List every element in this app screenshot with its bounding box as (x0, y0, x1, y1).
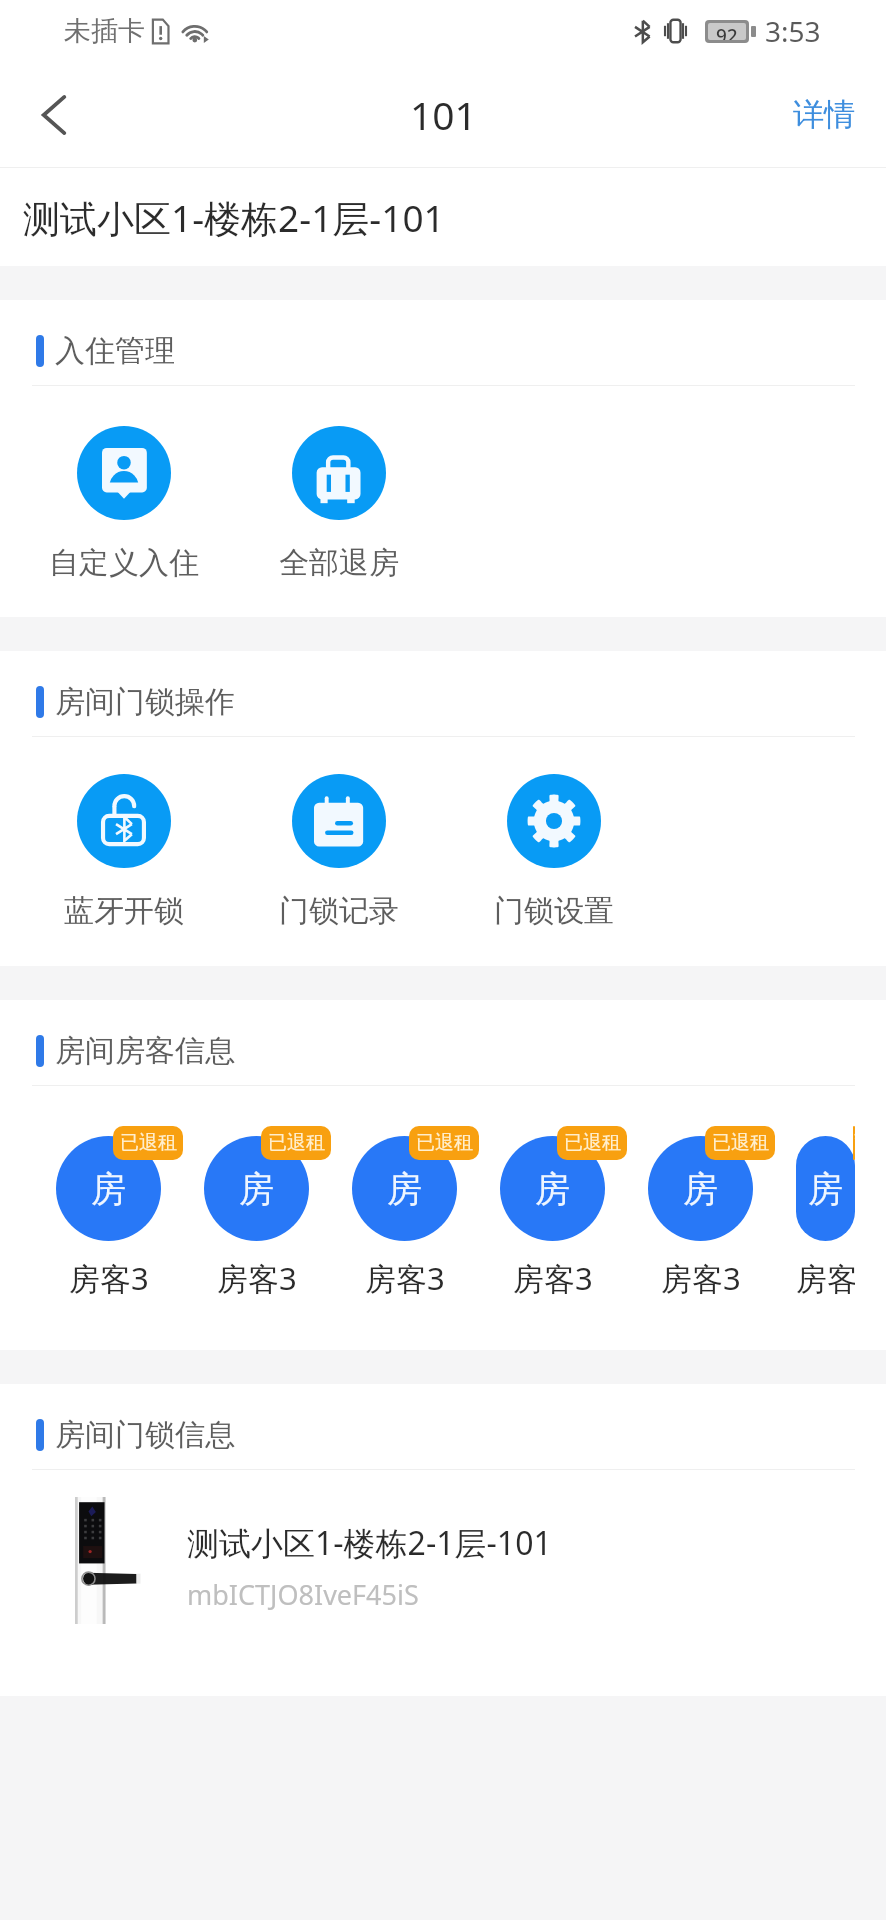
button[interactable]: 详情 (793, 62, 855, 167)
staticText: 门锁设置 (494, 892, 614, 930)
staticText: 房 (239, 1167, 274, 1211)
staticText: 已退租 (853, 1131, 855, 1155)
button[interactable]: 门锁设置 (430, 774, 645, 930)
staticText: 房客3 (69, 1257, 149, 1299)
staticText: 房 (683, 1167, 718, 1211)
button[interactable]: 测试小区1-楼栋2-1层-101 (75, 1497, 886, 1624)
staticText: 门锁记录 (279, 892, 399, 930)
button[interactable]: 房 (352, 1126, 500, 1299)
staticText: 房客3 (661, 1257, 741, 1299)
button[interactable]: 自定义入住 (0, 426, 215, 582)
button[interactable]: 门锁记录 (215, 774, 430, 930)
staticText: 自定义入住 (49, 544, 199, 582)
staticText: 101 (410, 88, 477, 141)
button[interactable]: 房 (204, 1126, 352, 1299)
button[interactable]: 全部退房 (215, 426, 430, 582)
staticText: 房间门锁操作 (55, 683, 235, 721)
staticText: 已退租 (120, 1131, 177, 1155)
button[interactable]: 房 (56, 1126, 204, 1299)
button[interactable]: 房 (648, 1126, 796, 1299)
staticText: 房 (535, 1167, 570, 1211)
staticText: 房客3 (796, 1257, 855, 1299)
staticText: 测试小区1-楼栋2-1层-101 (187, 1521, 552, 1565)
staticText: 92 (716, 23, 738, 40)
button[interactable]: 房 (796, 1126, 855, 1299)
staticText: 未插卡 (64, 14, 145, 48)
staticText: 蓝牙开锁 (64, 892, 184, 930)
staticText: 入住管理 (55, 332, 175, 370)
staticText: 房客3 (365, 1257, 445, 1299)
button[interactable]: Back (0, 62, 107, 167)
button[interactable]: 房 (500, 1126, 648, 1299)
button[interactable]: 蓝牙开锁 (0, 774, 215, 930)
staticText: 房 (387, 1167, 422, 1211)
staticText: 房客3 (513, 1257, 593, 1299)
staticText: 已退租 (268, 1131, 325, 1155)
staticText: 已退租 (416, 1131, 473, 1155)
button[interactable]: 测试小区1-楼栋2-1层-101 (0, 168, 886, 266)
staticText: 房 (91, 1167, 126, 1211)
staticText: mbICTJO8IveF45iS (187, 1576, 419, 1613)
staticText: 测试小区1-楼栋2-1层-101 (23, 192, 445, 243)
staticText: 已退租 (712, 1131, 769, 1155)
staticText: 全部退房 (279, 544, 399, 582)
staticText: 详情 (793, 95, 855, 134)
staticText: 已退租 (564, 1131, 621, 1155)
staticText: 房间房客信息 (55, 1032, 235, 1070)
staticText: 房间门锁信息 (55, 1416, 235, 1454)
staticText: 房 (808, 1167, 843, 1211)
staticText: 3:53 (765, 12, 821, 50)
staticText: 房客3 (217, 1257, 297, 1299)
